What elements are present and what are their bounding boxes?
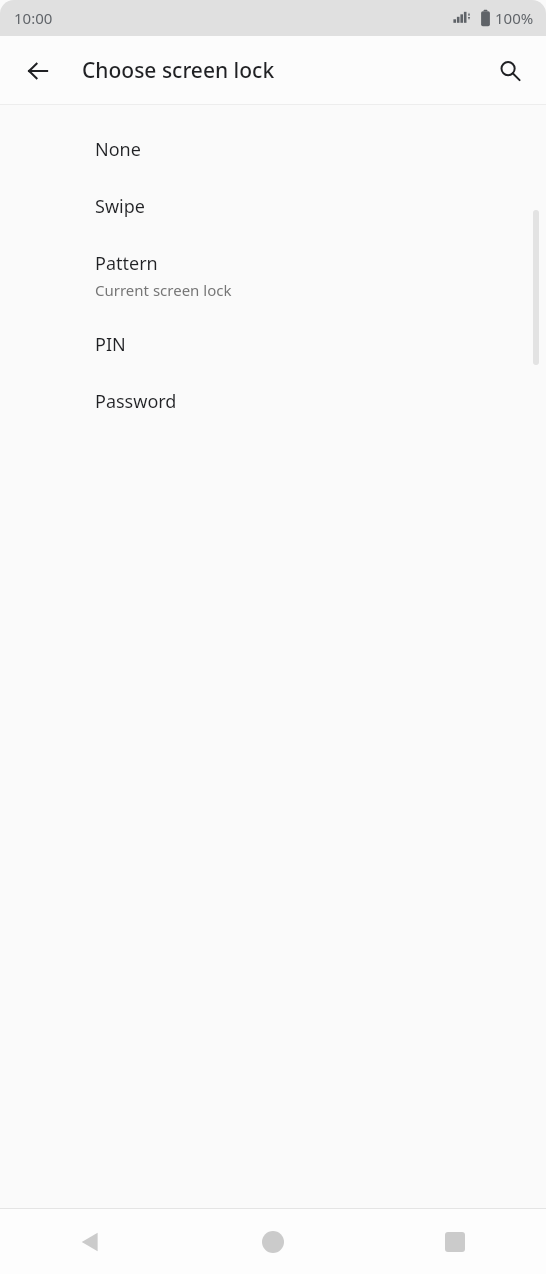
button[interactable]: Search [487, 48, 533, 94]
staticText: Swipe [95, 194, 145, 219]
staticText: 100% [495, 8, 534, 28]
button[interactable]: Home [182, 1209, 364, 1274]
button[interactable]: Back [0, 1209, 182, 1274]
button[interactable]: Recent apps [364, 1209, 546, 1274]
staticText: Password [95, 389, 177, 414]
button[interactable]: None [0, 121, 546, 178]
button[interactable]: PIN [0, 316, 546, 373]
button[interactable]: Back [14, 47, 62, 95]
button[interactable]: Password [0, 373, 546, 430]
staticText: Current screen lock [95, 280, 232, 300]
button[interactable]: Pattern [0, 235, 546, 316]
staticText: Choose screen lock [82, 56, 275, 85]
staticText: None [95, 137, 141, 162]
button[interactable]: Swipe [0, 178, 546, 235]
staticText: Pattern [95, 251, 158, 276]
staticText: PIN [95, 332, 126, 357]
staticText: 10:00 [14, 8, 53, 28]
